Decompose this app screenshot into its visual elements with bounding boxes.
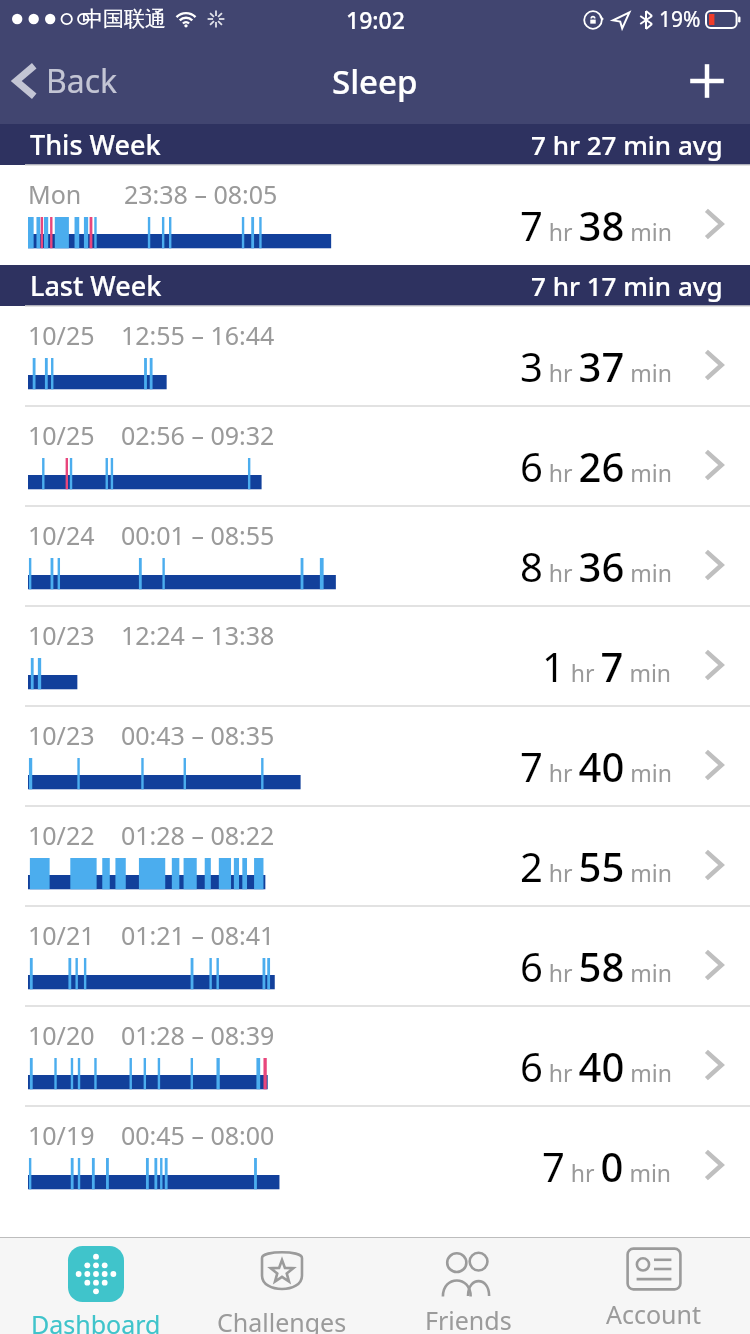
staticText: 10/24 [28,518,95,552]
button[interactable]: 10/24 [0,506,750,606]
button[interactable]: Mon [0,165,750,265]
staticText: Mon [28,177,82,211]
button[interactable]: 10/23 [0,706,750,806]
staticText: 7 hr 0 min [542,1139,672,1193]
staticText: Friends [425,1303,512,1334]
staticText: Sleep [332,59,418,104]
staticText: 10/20 [28,1018,95,1052]
staticText: Last Week [30,267,162,304]
button[interactable]: 10/19 [0,1106,750,1206]
staticText: 8 hr 36 min [520,539,672,593]
button[interactable]: 10/23 [0,606,750,706]
staticText: 01:28 – 08:39 [121,1018,275,1052]
staticText: 7 hr 38 min [520,198,672,252]
staticText: 01:21 – 08:41 [121,918,275,952]
button[interactable]: Challenges [192,1238,372,1334]
staticText: 10/25 [28,418,95,452]
staticText: 3 hr 37 min [520,339,672,393]
button[interactable]: 10/21 [0,906,750,1006]
staticText: 6 hr 58 min [520,939,672,993]
staticText: Account [606,1297,702,1331]
staticText: 10/23 [28,718,95,752]
staticText: 12:55 – 16:44 [121,318,275,352]
staticText: 01:28 – 08:22 [121,818,275,852]
staticText: 6 hr 40 min [520,1039,672,1093]
staticText: 10/23 [28,618,95,652]
staticText: 7 hr 17 min avg [531,268,723,303]
staticText: 1 hr 7 min [542,639,672,693]
button[interactable]: Add sleep log [664,38,750,124]
button[interactable]: 10/20 [0,1006,750,1106]
staticText: This Week [30,126,161,163]
staticText: 12:24 – 13:38 [121,618,275,652]
staticText: 中国联通 [82,6,166,32]
staticText: 00:43 – 08:35 [121,718,275,752]
staticText: Back [46,59,118,103]
staticText: 10/22 [28,818,95,852]
staticText: Challenges [217,1305,347,1334]
staticText: Dashboard [31,1307,161,1334]
staticText: 19:02 [346,4,405,35]
button[interactable]: 10/22 [0,806,750,906]
staticText: 00:45 – 08:00 [121,1118,275,1152]
staticText: 2 hr 55 min [520,839,672,893]
staticText: 7 hr 40 min [520,739,672,793]
staticText: 10/21 [28,918,95,952]
staticText: 19% [659,5,701,34]
button[interactable]: Friends [378,1238,558,1334]
staticText: 00:01 – 08:55 [121,518,275,552]
staticText: 10/25 [28,318,95,352]
button[interactable]: 10/25 [0,406,750,506]
staticText: 10/19 [28,1118,95,1152]
button[interactable]: 10/25 [0,306,750,406]
staticText: 23:38 – 08:05 [124,177,278,211]
staticText: 7 hr 27 min avg [531,127,723,162]
button[interactable]: Dashboard [6,1238,186,1334]
button[interactable]: Back [0,38,134,124]
button[interactable]: Account [564,1238,744,1334]
staticText: 6 hr 26 min [520,439,672,493]
staticText: 02:56 – 09:32 [121,418,275,452]
